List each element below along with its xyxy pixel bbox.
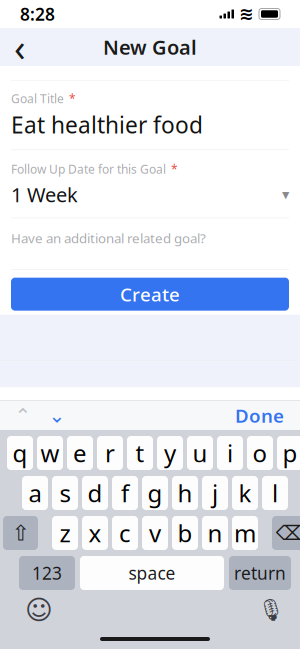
staticText: c — [119, 517, 131, 549]
button[interactable]: Shift — [3, 516, 38, 550]
staticText: u — [192, 437, 207, 469]
button[interactable]: a — [22, 476, 48, 510]
button[interactable]: 123 — [19, 556, 75, 590]
staticText: m — [234, 517, 256, 549]
staticText: e — [73, 437, 87, 469]
button[interactable]: y — [157, 436, 183, 470]
staticText: i — [227, 437, 233, 469]
staticText: ☺ — [25, 595, 53, 625]
button[interactable]: e — [67, 436, 93, 470]
button[interactable]: p — [277, 436, 300, 470]
button[interactable]: z — [52, 516, 78, 550]
staticText: 1 Week — [11, 181, 78, 208]
button[interactable]: Next field — [40, 401, 74, 430]
button[interactable]: m — [232, 516, 258, 550]
staticText: ⌃ — [14, 404, 31, 427]
staticText: Goal Title — [11, 91, 67, 106]
staticText: h — [177, 477, 192, 509]
button[interactable]: h — [172, 476, 198, 510]
button[interactable]: Back — [0, 27, 40, 67]
button[interactable]: q — [7, 436, 33, 470]
staticText: l — [272, 477, 278, 509]
staticText: New Goal — [103, 34, 197, 60]
staticText: Follow Up Date for this Goal — [11, 161, 169, 177]
staticText: 8:28 — [20, 2, 55, 25]
button[interactable]: r — [97, 436, 123, 470]
button[interactable]: o — [247, 436, 273, 470]
staticText: return — [234, 561, 286, 584]
staticText: o — [252, 437, 267, 469]
button[interactable]: s — [52, 476, 78, 510]
staticText: ⌫ — [275, 522, 300, 544]
button[interactable]: x — [82, 516, 108, 550]
staticText: d — [87, 477, 102, 509]
staticText: n — [207, 517, 222, 549]
button[interactable]: l — [262, 476, 288, 510]
staticText: ⇧ — [11, 521, 29, 545]
staticText: Eat healthier food — [11, 109, 203, 140]
staticText: x — [88, 517, 101, 549]
staticText: g — [147, 477, 162, 509]
button[interactable]: Delete — [272, 516, 300, 550]
button[interactable]: k — [232, 476, 258, 510]
button[interactable]: n — [202, 516, 228, 550]
button[interactable]: d — [82, 476, 108, 510]
button[interactable]: return — [229, 556, 291, 590]
staticText: 123 — [32, 561, 62, 584]
staticText: w — [40, 437, 59, 469]
staticText: y — [164, 437, 176, 469]
staticText: ▾ — [282, 186, 289, 203]
button[interactable]: t — [127, 436, 153, 470]
staticText: b — [177, 517, 192, 549]
button[interactable]: Dictate — [255, 596, 287, 624]
staticText: s — [59, 477, 70, 509]
staticText: q — [12, 437, 27, 469]
button[interactable]: Create — [11, 278, 289, 311]
button[interactable]: j — [202, 476, 228, 510]
button[interactable]: v — [142, 516, 168, 550]
button[interactable]: i — [217, 436, 243, 470]
staticText: z — [59, 517, 70, 549]
button[interactable]: g — [142, 476, 168, 510]
button[interactable]: space — [80, 556, 224, 590]
staticText: p — [282, 437, 297, 469]
staticText: Have an additional related goal? — [11, 229, 206, 247]
staticText: ‹ — [14, 22, 26, 72]
button[interactable]: w — [37, 436, 63, 470]
staticText: t — [135, 437, 144, 469]
button[interactable]: Done — [225, 401, 294, 430]
staticText: Done — [235, 403, 284, 428]
staticText: Create — [120, 282, 180, 306]
staticText: * — [69, 91, 76, 106]
staticText: ≋ — [239, 4, 254, 24]
staticText: ⌄ — [48, 404, 65, 427]
staticText: 🎙 — [257, 598, 284, 622]
button[interactable]: Previous field — [6, 401, 40, 430]
button[interactable]: Emoji — [23, 596, 55, 624]
button[interactable]: f — [112, 476, 138, 510]
staticText: v — [149, 517, 161, 549]
staticText: r — [105, 437, 115, 469]
staticText: j — [212, 477, 218, 509]
button[interactable]: b — [172, 516, 198, 550]
staticText: * — [171, 161, 178, 177]
staticText: a — [28, 477, 41, 509]
staticText: k — [238, 477, 251, 509]
staticText: space — [128, 561, 175, 584]
button[interactable]: u — [187, 436, 213, 470]
staticText: f — [121, 477, 129, 509]
button[interactable]: c — [112, 516, 138, 550]
